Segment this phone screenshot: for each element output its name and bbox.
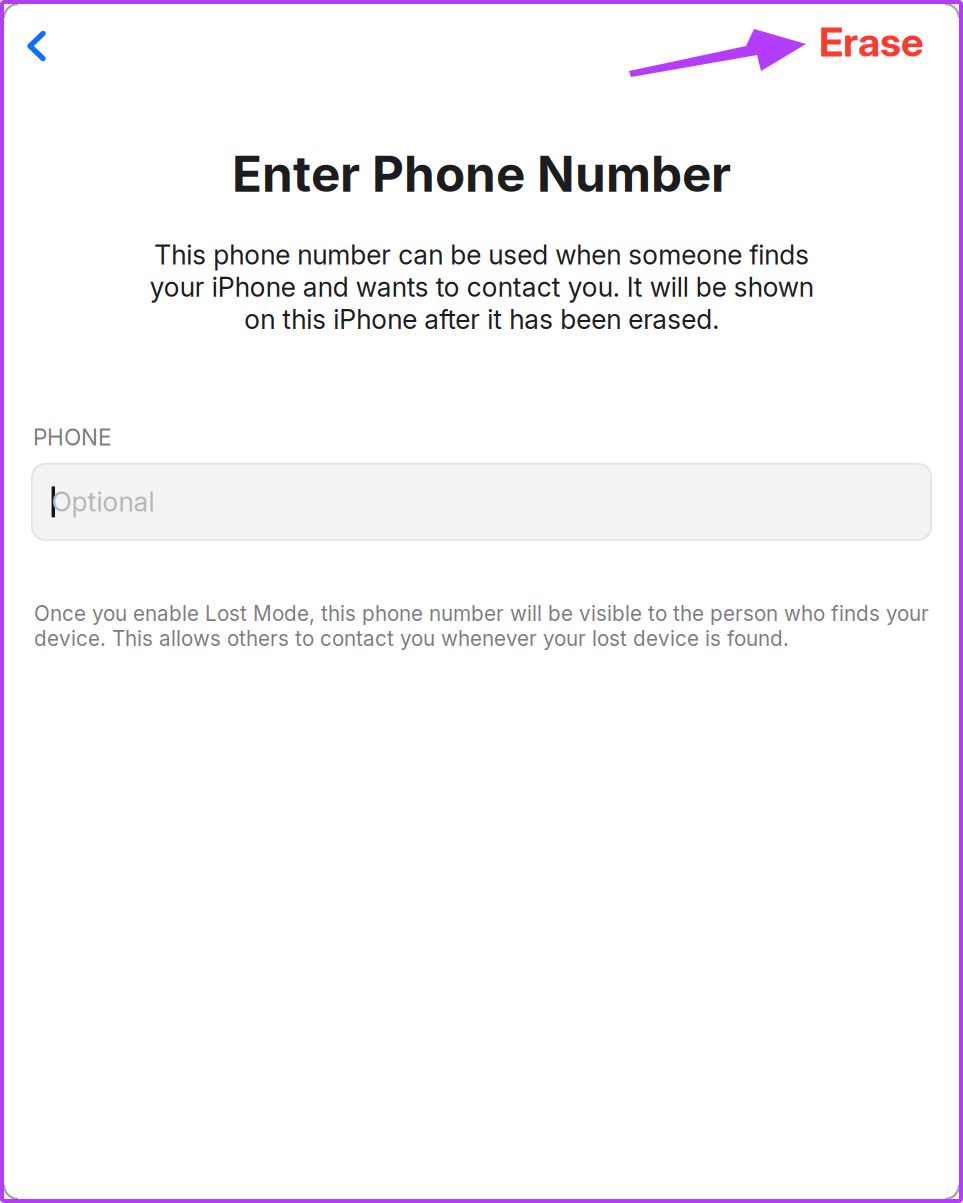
staticText: Optional (52, 486, 155, 518)
staticText: Erase (819, 18, 924, 66)
staticText: PHONE (33, 423, 112, 451)
staticText: Enter Phone Number (232, 144, 731, 204)
button[interactable]: Back (0, 13, 64, 74)
button[interactable]: Erase (801, 10, 963, 78)
button[interactable]: Optional (31, 463, 932, 541)
staticText: This phone number can be used when someo… (149, 239, 813, 335)
staticText: Once you enable Lost Mode, this phone nu… (34, 601, 929, 651)
